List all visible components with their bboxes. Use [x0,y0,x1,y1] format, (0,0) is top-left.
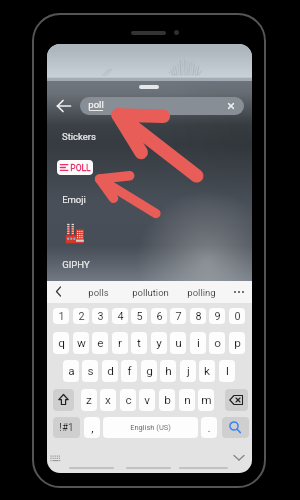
button[interactable]: 2 [73,308,89,324]
staticText: poll [88,99,104,110]
staticText: z [86,393,92,407]
button[interactable]: Stickers [62,131,96,142]
button[interactable]: English (US) [103,417,198,438]
button[interactable]: y [151,332,167,354]
staticText: f [127,364,132,378]
staticText: a [68,364,75,378]
button[interactable]: Previous suggestions [52,284,66,299]
button[interactable]: 4 [112,308,128,324]
button[interactable]: Hide keyboard [232,451,246,461]
button[interactable]: pollution [122,281,178,303]
button[interactable]: d [102,360,118,382]
staticText: 7 [175,310,182,323]
button[interactable]: 8 [190,308,206,324]
staticText: !#1 [59,422,74,434]
staticText: x [105,393,111,407]
staticText: c [125,393,132,407]
button[interactable]: More options [231,281,247,303]
button[interactable]: b [159,389,175,411]
button[interactable]: Shift [53,389,74,411]
button[interactable]: 5 [131,308,147,324]
button[interactable]: z [81,389,97,411]
staticText: polls [88,287,109,298]
button[interactable]: m [198,389,214,411]
button[interactable]: x [100,389,116,411]
button[interactable]: Search [222,417,249,438]
staticText: s [87,364,94,378]
button[interactable]: h [160,360,176,382]
staticText: n [184,393,191,407]
button[interactable]: GIPHY [62,259,90,270]
button[interactable]: w [73,332,89,354]
button[interactable]: q [53,332,69,354]
staticText: y [156,336,162,350]
staticText: e [97,336,104,350]
button[interactable]: v [139,389,155,411]
button[interactable] [80,97,244,115]
button[interactable]: 7 [170,308,186,324]
staticText: 0 [234,310,241,323]
button[interactable]: POLL [57,160,93,175]
button[interactable]: g [141,360,157,382]
staticText: 3 [97,310,104,323]
button[interactable]: s [82,360,98,382]
button[interactable]: n [179,389,195,411]
staticText: o [214,336,221,350]
staticText: k [204,364,210,378]
button[interactable]: Keyboard settings [50,455,61,463]
button[interactable]: Factory emoji [65,223,85,244]
button[interactable]: a [63,360,79,382]
staticText: v [144,393,150,407]
staticText: pollution [132,287,169,298]
button[interactable]: r [112,332,128,354]
button[interactable]: o [209,332,225,354]
button[interactable]: 3 [92,308,108,324]
staticText: i [197,336,200,350]
button[interactable]: c [120,389,136,411]
button[interactable]: polls [70,281,126,303]
staticText: 6 [156,310,163,323]
staticText: j [187,364,190,378]
staticText: l [226,364,229,378]
staticText: q [58,336,65,350]
button[interactable]: f [121,360,137,382]
staticText: d [107,364,114,378]
button[interactable]: . [201,417,217,438]
staticText: polling [187,287,216,298]
staticText: 8 [195,310,202,323]
button[interactable]: Back [55,95,72,117]
staticText: w [77,336,86,350]
button[interactable]: 1 [53,308,69,324]
button[interactable]: polling [173,281,229,303]
staticText: h [165,364,172,378]
button[interactable]: e [92,332,108,354]
button[interactable]: u [170,332,186,354]
button[interactable]: 9 [209,308,225,324]
staticText: 2 [78,310,85,323]
button[interactable]: p [229,332,245,354]
button[interactable]: t [131,332,147,354]
staticText: POLL [70,163,91,173]
button[interactable]: 6 [151,308,167,324]
button[interactable]: j [180,360,196,382]
staticText: 1 [58,310,65,323]
button[interactable]: k [199,360,215,382]
staticText: u [175,336,182,350]
staticText: r [118,336,122,350]
button[interactable]: 0 [229,308,245,324]
button[interactable]: Backspace [225,389,248,411]
staticText: g [146,364,153,378]
staticText: p [234,336,241,350]
button[interactable]: , [84,417,100,438]
button[interactable]: i [190,332,206,354]
staticText: . [207,421,211,435]
staticText: 4 [117,310,124,323]
staticText: , [91,421,94,435]
button[interactable]: Clear search [225,100,237,112]
button[interactable]: Emoji [62,194,86,205]
staticText: 5 [136,310,143,323]
staticText: b [164,393,171,407]
button[interactable]: l [219,360,235,382]
button[interactable]: !#1 [53,417,80,438]
staticText: English (US) [130,423,171,432]
